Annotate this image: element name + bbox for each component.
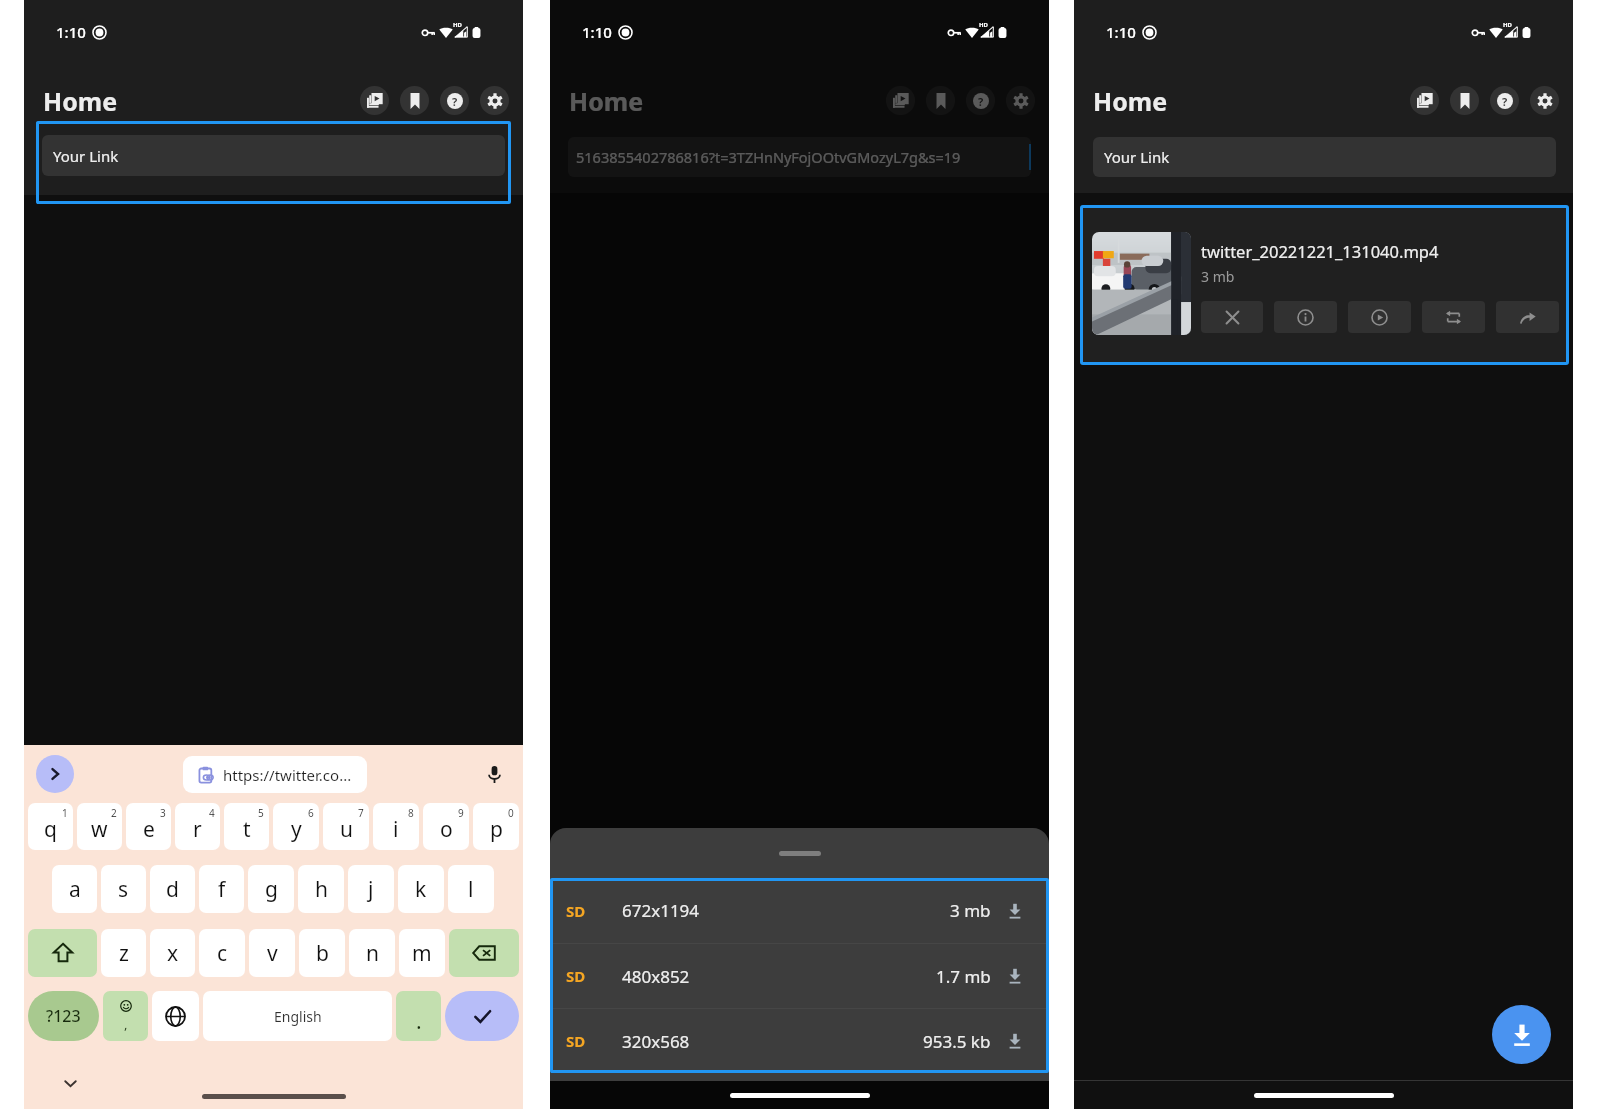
staticText: i <box>393 815 399 844</box>
staticText: 7 <box>358 806 364 820</box>
button[interactable]: x <box>150 929 195 977</box>
staticText: b <box>316 939 329 968</box>
staticText: g <box>265 875 278 904</box>
button[interactable]: Enter <box>445 991 519 1041</box>
button[interactable]: o <box>423 803 469 850</box>
button[interactable]: a <box>52 865 97 913</box>
button[interactable]: s <box>101 865 146 913</box>
button[interactable]: https://twitter.co... <box>183 756 367 793</box>
button[interactable]: Expand <box>36 755 74 793</box>
button[interactable]: q <box>28 803 73 850</box>
button[interactable]: Video library <box>886 86 915 115</box>
button[interactable]: Shift <box>28 929 97 977</box>
button[interactable]: SD <box>550 878 1049 943</box>
button[interactable]: h <box>298 865 344 913</box>
button[interactable]: v <box>249 929 295 977</box>
staticText: SD <box>566 901 586 921</box>
button[interactable]: k <box>398 865 444 913</box>
button[interactable]: Voice input <box>477 757 511 791</box>
staticText: . <box>416 1007 422 1036</box>
button[interactable]: Help <box>1490 86 1519 115</box>
button[interactable]: Repeat <box>1422 301 1485 333</box>
staticText: English <box>274 1007 322 1026</box>
button[interactable]: Download 672x1194 <box>1002 898 1028 924</box>
button[interactable]: e <box>126 803 171 850</box>
button[interactable]: Help <box>440 86 469 115</box>
button[interactable]: Info <box>1274 301 1337 333</box>
staticText: f <box>218 875 226 904</box>
button[interactable]: Emoji <box>103 991 148 1041</box>
button[interactable]: Bookmarks <box>400 86 429 115</box>
staticText: Your Link <box>1104 147 1170 167</box>
staticText: 1.7 mb <box>936 965 991 988</box>
button[interactable]: Bookmarks <box>1450 86 1479 115</box>
button[interactable]: p <box>473 803 519 850</box>
staticText: 3 <box>160 806 166 820</box>
button[interactable]: z <box>101 929 146 977</box>
button[interactable]: n <box>349 929 395 977</box>
button[interactable]: u <box>323 803 369 850</box>
staticText: u <box>340 815 353 844</box>
staticText: twitter_20221221_131040.mp4 <box>1201 240 1439 262</box>
staticText: q <box>44 815 57 844</box>
staticText: a <box>69 875 81 904</box>
button[interactable]: Video library <box>360 86 389 115</box>
button[interactable]: SD <box>550 1009 1049 1073</box>
staticText: n <box>366 939 379 968</box>
button[interactable]: y <box>273 803 319 850</box>
button[interactable]: m <box>399 929 445 977</box>
button[interactable]: Share <box>1496 301 1559 333</box>
staticText: https://twitter.co... <box>223 765 352 785</box>
button[interactable]: Backspace <box>449 929 519 977</box>
button[interactable]: g <box>248 865 294 913</box>
button[interactable]: SD <box>550 944 1049 1008</box>
button[interactable]: d <box>150 865 195 913</box>
staticText: s <box>118 875 129 904</box>
button[interactable]: Download 480x852 <box>1002 963 1028 989</box>
button[interactable]: f <box>199 865 244 913</box>
staticText: 480x852 <box>622 965 690 988</box>
staticText: 3 mb <box>1201 267 1235 286</box>
button[interactable]: Download <box>1492 1005 1551 1064</box>
button[interactable]: Settings <box>480 86 509 115</box>
button[interactable]: i <box>373 803 419 850</box>
staticText: 1 <box>62 806 68 820</box>
button[interactable]: Delete <box>1201 301 1263 333</box>
button[interactable]: ?123 <box>28 991 99 1041</box>
button[interactable]: Settings <box>1006 86 1035 115</box>
button[interactable]: twitter_20221221_131040.mp4 <box>1080 205 1569 365</box>
staticText: 2 <box>111 806 117 820</box>
button[interactable]: Change language <box>152 991 199 1041</box>
staticText: Your Link <box>53 146 119 166</box>
button[interactable]: . <box>396 991 441 1041</box>
button[interactable]: Your Link <box>1093 137 1556 177</box>
staticText: 8 <box>408 806 414 820</box>
staticText: x <box>167 939 179 968</box>
button[interactable]: t <box>224 803 269 850</box>
button[interactable]: Download 320x568 <box>1002 1028 1028 1054</box>
staticText: 953.5 kb <box>923 1030 991 1053</box>
button[interactable]: English <box>203 991 392 1041</box>
staticText: Home <box>43 84 118 118</box>
button[interactable]: r <box>175 803 220 850</box>
staticText: w <box>91 815 108 844</box>
button[interactable]: w <box>77 803 122 850</box>
button[interactable]: c <box>199 929 245 977</box>
button[interactable]: Video library <box>1410 86 1439 115</box>
button[interactable]: Hide keyboard <box>54 1068 86 1098</box>
staticText: 320x568 <box>622 1030 690 1053</box>
staticText: ? <box>978 94 984 109</box>
button[interactable]: Play <box>1348 301 1411 333</box>
button[interactable]: Your Link <box>42 135 505 176</box>
button[interactable]: l <box>448 865 494 913</box>
staticText: 672x1194 <box>622 899 700 922</box>
staticText: v <box>267 939 278 968</box>
button[interactable]: b <box>299 929 345 977</box>
staticText: k <box>415 875 427 904</box>
button[interactable]: Bookmarks <box>926 86 955 115</box>
staticText: 1:10 <box>1106 22 1136 42</box>
staticText: ? <box>1502 94 1508 109</box>
button[interactable]: Settings <box>1530 86 1559 115</box>
button[interactable]: j <box>348 865 394 913</box>
button[interactable]: Help <box>966 86 995 115</box>
